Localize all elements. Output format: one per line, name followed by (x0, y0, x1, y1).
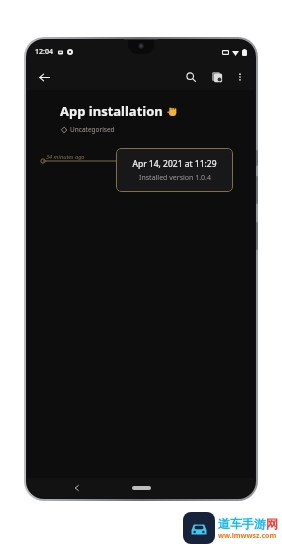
button[interactable]: Back (33, 66, 55, 88)
button[interactable]: Search (180, 66, 202, 88)
staticText: Apr 14, 2021 at 11:29 (132, 158, 217, 170)
button[interactable]: Back (70, 481, 84, 495)
button[interactable]: Apr 14, 2021 at 11:29 (116, 148, 233, 192)
staticText: 道车手游 (218, 516, 266, 531)
staticText: App installation (60, 102, 163, 120)
button[interactable]: Home (132, 486, 151, 490)
staticText: 网 (266, 516, 278, 531)
button[interactable]: More options (230, 67, 250, 87)
button[interactable]: Uncategorised (61, 125, 115, 134)
staticText: ww.lmwwsz.com (218, 531, 277, 541)
staticText: 34 minutes ago (46, 153, 85, 161)
button[interactable]: Archive (206, 66, 228, 88)
staticText: Installed version 1.0.4 (139, 173, 211, 183)
staticText: 12:04 (35, 47, 53, 57)
staticText: Uncategorised (70, 125, 115, 134)
